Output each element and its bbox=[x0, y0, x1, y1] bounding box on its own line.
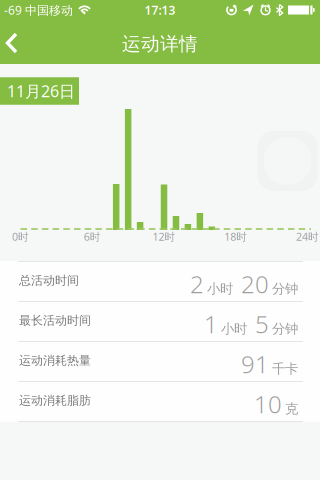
staticText: 20 bbox=[241, 268, 269, 300]
staticText: 总活动时间 bbox=[19, 273, 79, 288]
staticText: 17:13 bbox=[144, 2, 175, 18]
button[interactable]: 运动消耗脂肪 bbox=[0, 382, 320, 421]
staticText: 1 bbox=[204, 308, 218, 340]
staticText: 6时 bbox=[84, 229, 101, 244]
staticText: -69 中国移动 bbox=[4, 2, 73, 18]
button[interactable]: 总活动时间 bbox=[0, 262, 320, 301]
staticText: 0时 bbox=[12, 229, 29, 244]
staticText: 最长活动时间 bbox=[19, 313, 91, 328]
staticText: 10 bbox=[254, 388, 282, 420]
staticText: 12时 bbox=[152, 229, 175, 244]
button[interactable] bbox=[0, 20, 26, 64]
staticText: 2 bbox=[190, 268, 204, 300]
staticText: 运动详情 bbox=[122, 32, 198, 55]
staticText: 小时 bbox=[207, 281, 233, 297]
staticText: 91 bbox=[241, 348, 269, 380]
staticText: 运动消耗脂肪 bbox=[19, 393, 91, 408]
staticText: 克 bbox=[285, 401, 298, 417]
staticText: 小时 bbox=[221, 321, 247, 337]
staticText: 5 bbox=[255, 308, 269, 340]
staticText: 分钟 bbox=[272, 281, 298, 297]
staticText: 运动消耗热量 bbox=[19, 353, 91, 368]
staticText: 18时 bbox=[224, 229, 247, 244]
button[interactable]: 最长活动时间 bbox=[0, 302, 320, 341]
staticText: 千卡 bbox=[272, 361, 298, 377]
staticText: 分钟 bbox=[272, 321, 298, 337]
button[interactable]: 运动消耗热量 bbox=[0, 342, 320, 381]
staticText: 11月26日 bbox=[7, 80, 75, 102]
staticText: 24时 bbox=[296, 229, 319, 244]
